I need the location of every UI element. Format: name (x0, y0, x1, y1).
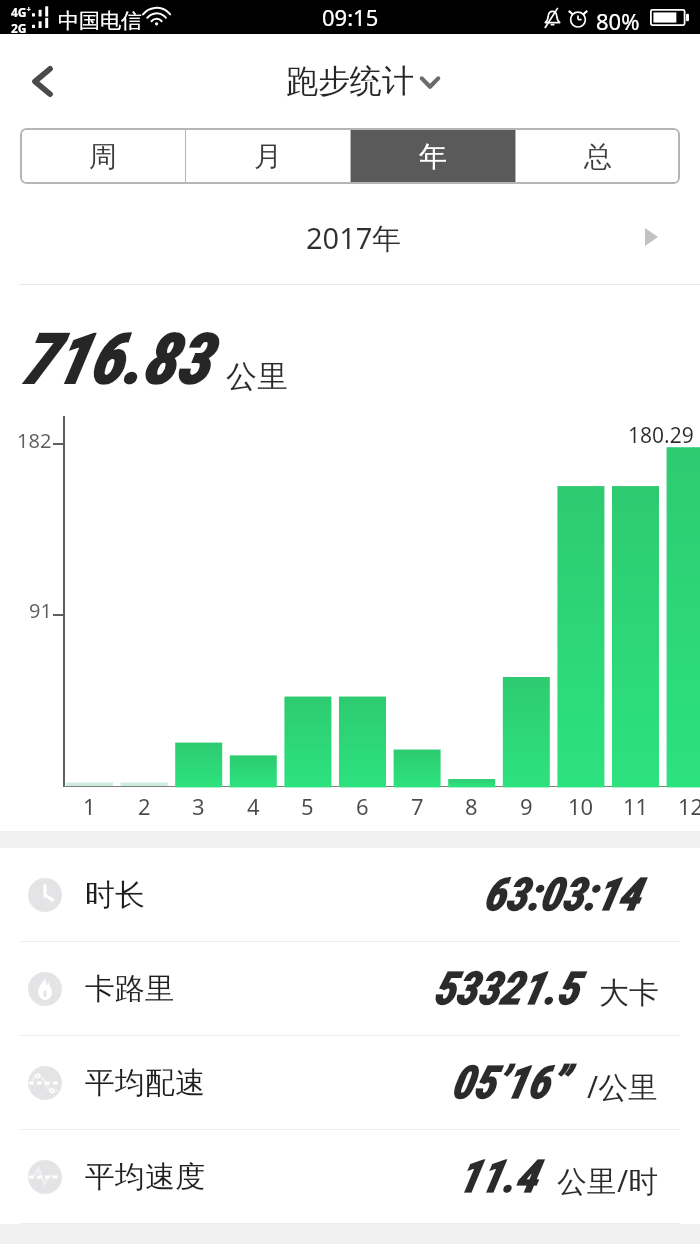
staticText: 中国电信 (58, 8, 142, 34)
button[interactable]: 卡路里 (0, 942, 700, 1035)
staticText: 9 (520, 791, 533, 821)
button[interactable]: 时长 (0, 848, 700, 941)
staticText: 11.4 (458, 1150, 537, 1203)
staticText: 4G⁺ (11, 4, 31, 20)
staticText: 3 (192, 791, 205, 821)
staticText: 大卡 (599, 974, 659, 1012)
staticText: 8 (465, 791, 478, 821)
staticText: 11 (623, 791, 649, 821)
staticText: 平均配速 (85, 1064, 205, 1102)
button[interactable]: Back (12, 51, 72, 111)
staticText: 公里/时 (557, 1160, 659, 1201)
staticText: 年 (419, 139, 447, 174)
staticText: 09:15 (322, 2, 379, 32)
staticText: 180.29 (628, 421, 694, 450)
button[interactable]: 周 (20, 128, 185, 184)
button[interactable]: 跑步统计 (0, 55, 700, 107)
staticText: 跑步统计 (286, 61, 414, 101)
staticText: 716.83 (21, 319, 210, 400)
staticText: 7 (411, 791, 424, 821)
staticText: /公里 (587, 1066, 659, 1107)
staticText: 53321.5 (433, 962, 579, 1015)
button[interactable]: 平均配速 (0, 1036, 700, 1129)
staticText: 卡路里 (85, 970, 175, 1008)
staticText: 周 (89, 139, 117, 174)
staticText: 182 (17, 427, 52, 454)
staticText: 91 (29, 597, 52, 624)
staticText: 2G (11, 20, 27, 36)
staticText: 公里 (226, 357, 288, 396)
staticText: 05’16” (451, 1056, 567, 1109)
staticText: 1 (83, 791, 96, 821)
staticText: 2 (138, 791, 151, 821)
staticText: 10 (568, 791, 594, 821)
staticText: 2017年 (306, 218, 402, 258)
staticText: 63:03:14 (483, 868, 640, 921)
staticText: 平均速度 (85, 1158, 205, 1196)
staticText: 12 (678, 791, 700, 821)
staticText: 5 (301, 791, 314, 821)
staticText: 80% (596, 6, 640, 36)
staticText: 时长 (85, 876, 145, 914)
staticText: 总 (584, 139, 612, 174)
button[interactable]: 平均速度 (0, 1130, 700, 1223)
staticText: 6 (356, 791, 369, 821)
staticText: 月 (254, 139, 282, 174)
button[interactable]: 总 (516, 128, 680, 184)
button[interactable]: 月 (186, 128, 350, 184)
button[interactable]: Next year (629, 215, 673, 259)
button[interactable]: 年 (351, 128, 515, 184)
staticText: 4 (247, 791, 260, 821)
